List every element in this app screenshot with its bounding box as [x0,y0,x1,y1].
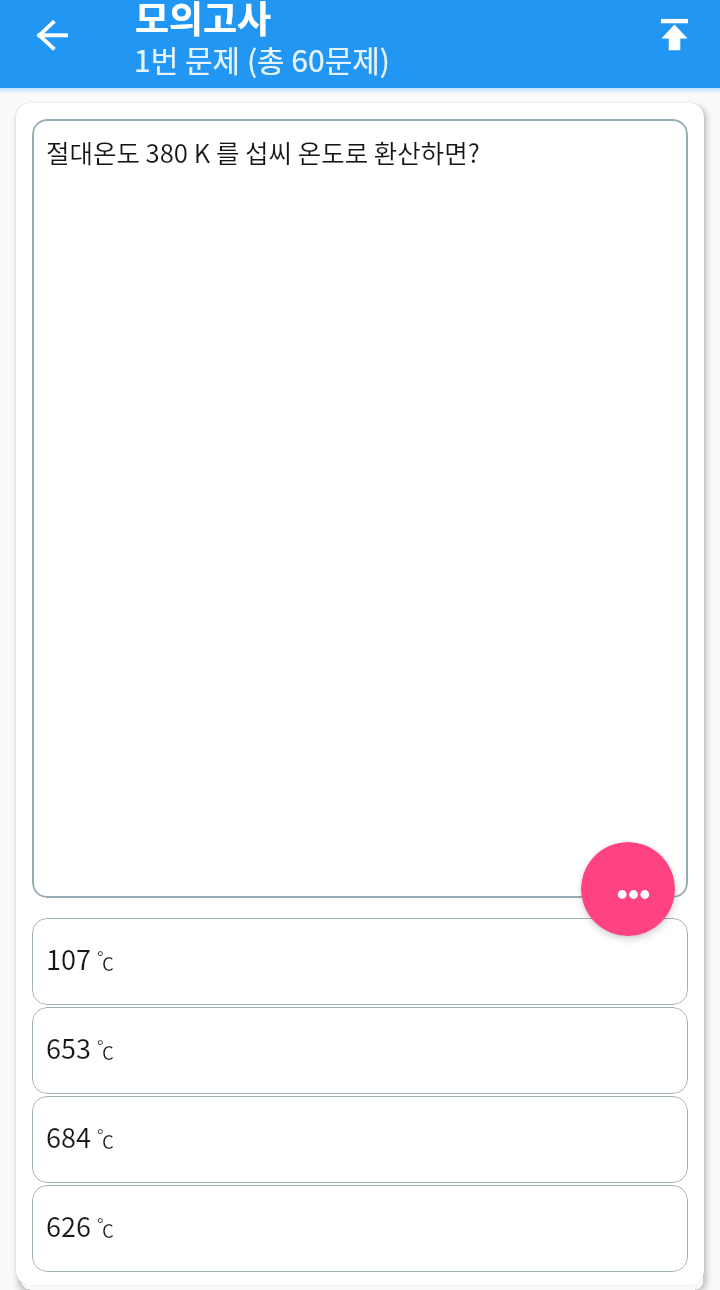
staticText: 684 [46,1117,91,1156]
staticText: 절대온도 380 K 를 섭씨 온도로 환산하면? [46,133,480,170]
button[interactable]: Back [12,12,76,76]
staticText: ° [97,1211,104,1237]
staticText: ° [97,1033,104,1059]
staticText: C [102,1039,114,1066]
button[interactable]: Jump to top [645,6,705,66]
staticText: ° [97,1122,104,1148]
staticText: C [102,950,114,977]
staticText: ° [97,944,104,970]
staticText: C [102,1128,114,1155]
button[interactable]: 626 [32,1185,688,1272]
staticText: 1번 문제 (총 60문제) [134,37,390,80]
staticText: C [102,1217,114,1244]
button[interactable]: 653 [32,1007,688,1094]
staticText: 626 [46,1206,91,1245]
button[interactable]: 684 [32,1096,688,1183]
button[interactable]: More options [581,842,675,936]
staticText: 모의고사 [135,0,272,44]
button[interactable]: 절대온도 380 K 를 섭씨 온도로 환산하면? [32,119,688,898]
staticText: 653 [46,1028,91,1067]
button[interactable]: 107 [32,918,688,1005]
staticText: 107 [46,939,91,978]
